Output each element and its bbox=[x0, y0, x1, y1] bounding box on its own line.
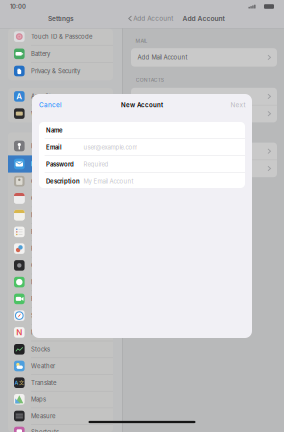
button[interactable]: Add Account bbox=[129, 12, 173, 25]
staticText: Stocks bbox=[31, 346, 50, 353]
button[interactable]: Camera bbox=[8, 257, 113, 274]
staticText: 10:00 bbox=[10, 3, 26, 10]
button[interactable]: Add CalDAV Account bbox=[131, 143, 277, 160]
staticText: Camera bbox=[31, 262, 51, 269]
staticText: CONTACTS bbox=[136, 77, 164, 83]
staticText: 文 bbox=[19, 379, 24, 386]
staticText: FaceTime bbox=[31, 295, 56, 303]
button[interactable]: Maps bbox=[8, 391, 113, 408]
staticText: Next bbox=[230, 101, 245, 109]
button[interactable]: Shortcuts bbox=[8, 423, 113, 432]
button[interactable]: Weather bbox=[8, 357, 113, 375]
button[interactable]: FaceTime bbox=[8, 290, 113, 307]
staticText: App Store bbox=[31, 93, 60, 100]
staticText: Contacts bbox=[31, 178, 56, 185]
staticText: News bbox=[31, 329, 47, 336]
staticText: Add Contacts Account bbox=[137, 93, 202, 100]
button[interactable]: Notes bbox=[8, 206, 113, 224]
staticText: Email bbox=[46, 144, 62, 151]
button[interactable]: Touch ID & Passcode bbox=[8, 28, 113, 45]
button[interactable]: N bbox=[8, 324, 113, 341]
button[interactable]: Battery bbox=[8, 45, 113, 62]
staticText: Weather bbox=[31, 362, 55, 370]
button[interactable]: A bbox=[8, 88, 113, 105]
staticText: Mail bbox=[31, 160, 41, 168]
staticText: Shortcuts bbox=[31, 428, 59, 432]
staticText: Required bbox=[83, 161, 108, 168]
button[interactable]: Add Contacts Account bbox=[131, 88, 277, 105]
button[interactable]: Photos bbox=[8, 240, 113, 257]
staticText: Touch ID & Passcode bbox=[31, 33, 92, 40]
button[interactable]: Passwords bbox=[8, 137, 113, 155]
staticText: Safari bbox=[31, 312, 46, 319]
staticText: Wallet bbox=[31, 110, 47, 117]
button[interactable]: Add LDAP Account bbox=[131, 105, 277, 122]
staticText: Notes bbox=[31, 211, 48, 219]
staticText: user@example.com bbox=[83, 144, 137, 151]
staticText: Description bbox=[46, 178, 80, 185]
staticText: Messages bbox=[31, 278, 58, 286]
button[interactable]: Reminders bbox=[8, 223, 113, 240]
button[interactable]: Add Mail Account bbox=[131, 49, 277, 66]
staticText: N bbox=[16, 328, 22, 337]
staticText: Add Mail Account bbox=[137, 54, 187, 61]
staticText: MAIL bbox=[135, 38, 147, 44]
button[interactable]: Cancel bbox=[36, 98, 65, 112]
staticText: Passwords bbox=[31, 142, 62, 150]
staticText: My Email Account bbox=[83, 178, 133, 185]
button[interactable]: Next bbox=[227, 98, 248, 112]
staticText: Photos bbox=[31, 245, 52, 252]
staticText: Translate bbox=[31, 379, 56, 386]
button[interactable]: Messages bbox=[8, 273, 113, 291]
button[interactable]: Privacy & Security bbox=[8, 62, 113, 80]
staticText: Maps bbox=[31, 396, 46, 403]
staticText: A bbox=[16, 92, 22, 101]
staticText: Privacy & Security bbox=[31, 67, 80, 75]
staticText: Settings bbox=[48, 14, 74, 22]
button[interactable]: Safari bbox=[8, 307, 113, 324]
staticText: Password bbox=[46, 161, 74, 168]
button[interactable]: Measure bbox=[8, 407, 113, 425]
staticText: Measure bbox=[31, 412, 55, 420]
staticText: Reminders bbox=[31, 228, 60, 236]
button[interactable]: Wallet bbox=[8, 105, 113, 122]
staticText: Add Account bbox=[133, 15, 173, 22]
button[interactable]: Add Subscribed Calendar bbox=[131, 160, 277, 177]
staticText: Add Account bbox=[182, 14, 224, 23]
button[interactable]: Contacts bbox=[8, 173, 113, 190]
button[interactable]: Stocks bbox=[8, 341, 113, 358]
staticText: Battery bbox=[31, 50, 50, 57]
staticText: Cancel bbox=[39, 101, 62, 109]
staticText: New Account bbox=[121, 101, 163, 109]
button[interactable]: Mail bbox=[8, 155, 113, 173]
button[interactable]: A bbox=[8, 374, 113, 391]
button[interactable]: Calendar bbox=[8, 190, 113, 207]
staticText: Calendar bbox=[31, 195, 55, 202]
staticText: Name bbox=[46, 127, 63, 134]
staticText: A bbox=[14, 379, 18, 386]
